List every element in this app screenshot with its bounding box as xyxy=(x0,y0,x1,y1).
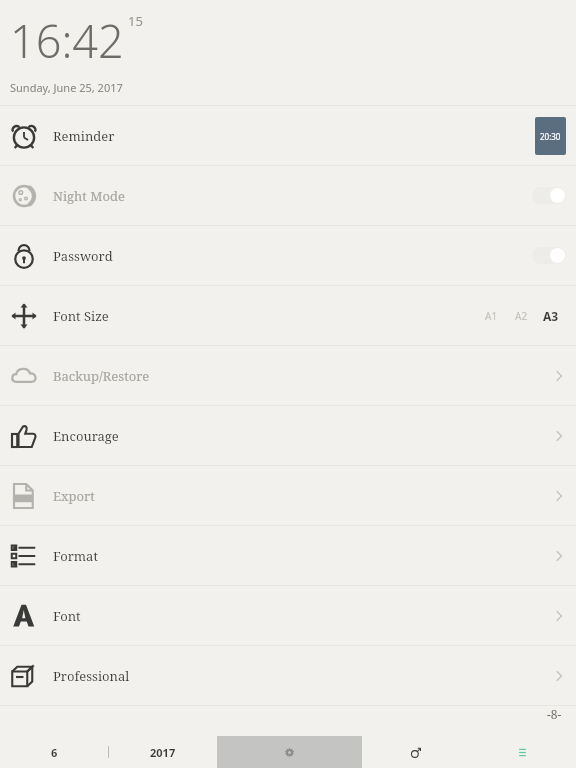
button[interactable]: 6 xyxy=(0,736,108,768)
button[interactable]: Menu xyxy=(469,736,576,768)
staticText: Encourage xyxy=(53,427,119,445)
staticText: A2 xyxy=(515,309,528,323)
button[interactable]: Night Mode xyxy=(0,166,576,226)
staticText: Professional xyxy=(53,667,130,685)
staticText: Font Size xyxy=(53,307,109,325)
staticText: 20:30 xyxy=(540,131,561,142)
button[interactable]: Export xyxy=(0,466,576,526)
staticText: Sunday, June 25, 2017 xyxy=(10,80,123,95)
button[interactable]: Encourage xyxy=(0,406,576,466)
staticText: -8- xyxy=(547,706,562,722)
staticText: 6 xyxy=(51,745,58,760)
button[interactable]: Font Size xyxy=(0,286,576,346)
staticText: Backup/Restore xyxy=(53,367,150,385)
staticText: A1 xyxy=(485,309,498,323)
button[interactable]: Backup/Restore xyxy=(0,346,576,406)
button[interactable]: Profile xyxy=(362,736,469,768)
staticText: Reminder xyxy=(53,127,115,145)
staticText: 2017 xyxy=(150,745,176,760)
button[interactable]: Settings xyxy=(217,736,362,768)
button[interactable]: Password xyxy=(0,226,576,286)
button[interactable]: A1 xyxy=(476,301,506,331)
button[interactable]: 2017 xyxy=(109,736,217,768)
staticText: A3 xyxy=(543,308,559,324)
button[interactable]: Font xyxy=(0,586,576,646)
staticText: Night Mode xyxy=(53,187,125,205)
button[interactable]: 20:30 xyxy=(535,117,566,155)
staticText: Export xyxy=(53,487,95,505)
button[interactable]: A2 xyxy=(506,301,536,331)
button[interactable]: Format xyxy=(0,526,576,586)
button[interactable]: Toggle xyxy=(532,247,566,264)
staticText: Password xyxy=(53,247,113,265)
staticText: Font xyxy=(53,607,81,625)
button[interactable]: Reminder xyxy=(0,106,576,166)
button[interactable]: A3 xyxy=(536,301,566,331)
button[interactable]: Toggle xyxy=(532,187,566,204)
button[interactable]: Professional xyxy=(0,646,576,706)
staticText: Format xyxy=(53,547,98,565)
staticText: 15 xyxy=(128,12,143,30)
staticText: 16:42 xyxy=(10,10,124,71)
